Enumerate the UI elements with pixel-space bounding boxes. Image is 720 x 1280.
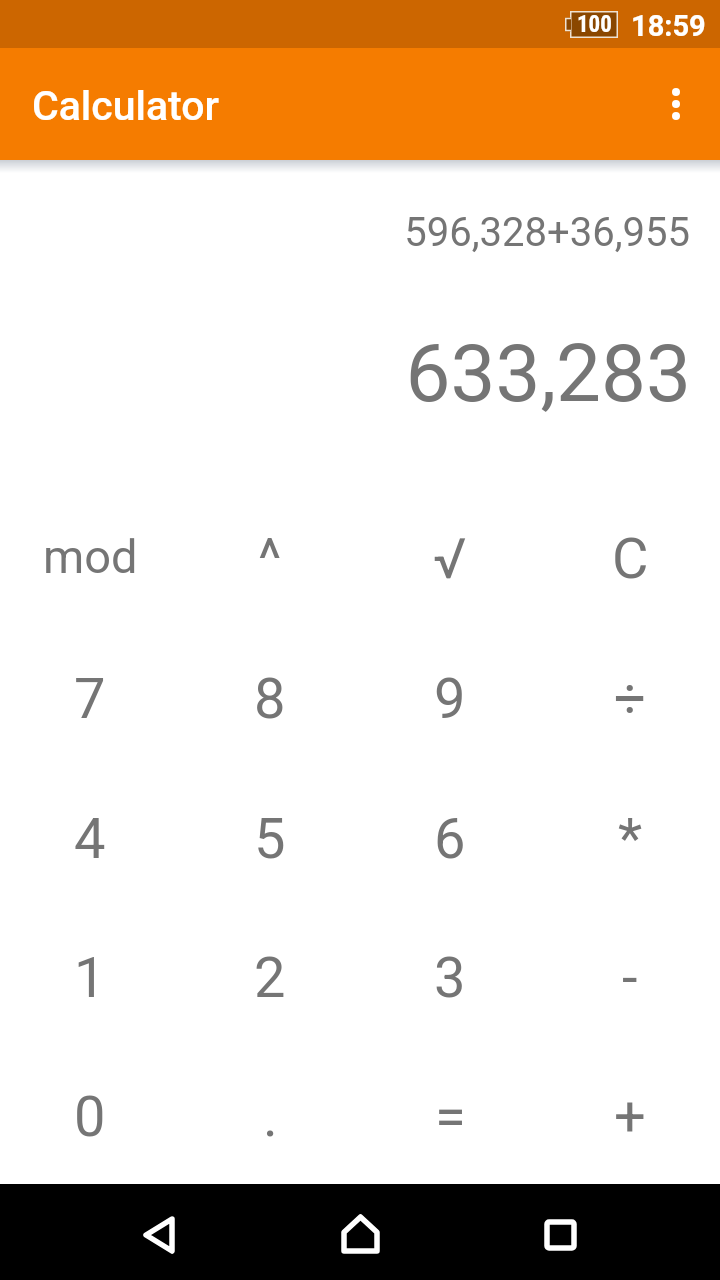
button[interactable]: C bbox=[540, 487, 720, 627]
button[interactable]: . bbox=[180, 1045, 360, 1184]
button[interactable]: 6 bbox=[360, 767, 540, 906]
staticText: 596,328+36,955 bbox=[404, 209, 690, 256]
button[interactable]: ^ bbox=[180, 487, 360, 627]
button[interactable]: 0 bbox=[0, 1045, 180, 1184]
staticText: 5 bbox=[254, 806, 286, 872]
button[interactable]: 1 bbox=[0, 906, 180, 1045]
button[interactable]: More options bbox=[632, 48, 720, 160]
staticText: √ bbox=[433, 526, 467, 592]
staticText: 8 bbox=[254, 666, 286, 732]
button[interactable]: - bbox=[540, 906, 720, 1045]
button[interactable]: 7 bbox=[0, 627, 180, 767]
staticText: 100 bbox=[577, 11, 612, 38]
button[interactable]: 3 bbox=[360, 906, 540, 1045]
staticText: + bbox=[614, 1084, 646, 1150]
button[interactable]: * bbox=[540, 767, 720, 906]
button[interactable]: 2 bbox=[180, 906, 360, 1045]
button[interactable]: + bbox=[540, 1045, 720, 1184]
button[interactable]: ÷ bbox=[540, 627, 720, 767]
button[interactable]: 9 bbox=[360, 627, 540, 767]
staticText: ÷ bbox=[614, 666, 646, 732]
button[interactable]: 4 bbox=[0, 767, 180, 906]
staticText: 7 bbox=[74, 666, 106, 732]
staticText: 6 bbox=[434, 806, 466, 872]
staticText: 2 bbox=[254, 945, 286, 1011]
button[interactable]: 5 bbox=[180, 767, 360, 906]
staticText: ^ bbox=[258, 526, 282, 592]
staticText: Calculator bbox=[32, 82, 220, 130]
button[interactable]: Recent apps bbox=[512, 1187, 608, 1280]
staticText: 0 bbox=[74, 1084, 106, 1150]
button[interactable]: √ bbox=[360, 487, 540, 627]
button[interactable]: Home bbox=[312, 1186, 408, 1280]
staticText: 633,283 bbox=[405, 327, 691, 421]
staticText: mod bbox=[43, 529, 138, 584]
button[interactable]: 8 bbox=[180, 627, 360, 767]
button[interactable]: Back bbox=[111, 1187, 207, 1280]
staticText: - bbox=[622, 945, 638, 1011]
staticText: 1 bbox=[74, 945, 106, 1011]
staticText: 9 bbox=[434, 666, 466, 732]
staticText: 4 bbox=[74, 806, 106, 872]
staticText: * bbox=[618, 806, 643, 872]
button[interactable]: mod bbox=[0, 487, 180, 627]
button[interactable]: = bbox=[360, 1045, 540, 1184]
staticText: C bbox=[612, 526, 649, 592]
staticText: = bbox=[435, 1084, 466, 1150]
staticText: 3 bbox=[434, 945, 466, 1011]
staticText: 18:59 bbox=[631, 9, 706, 43]
staticText: . bbox=[263, 1084, 278, 1150]
